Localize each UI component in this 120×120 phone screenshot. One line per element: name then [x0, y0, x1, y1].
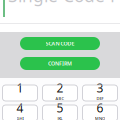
button[interactable]: 1	[2, 85, 37, 101]
staticText: GHI	[16, 116, 23, 120]
staticText: CONFIRM	[48, 60, 72, 67]
staticText: 1	[16, 80, 23, 96]
staticText: DEF	[96, 96, 103, 101]
staticText: 5	[56, 100, 63, 116]
button[interactable]: SCAN CODE	[20, 37, 100, 50]
staticText: MNO	[95, 116, 105, 120]
staticText: 6	[96, 100, 103, 116]
button[interactable]: 6	[82, 105, 117, 120]
staticText: 4	[16, 100, 23, 116]
button[interactable]: CONFIRM	[20, 57, 100, 70]
staticText: ABC	[55, 96, 64, 101]
button[interactable]: 4	[2, 105, 37, 120]
staticText: SCAN CODE	[45, 40, 74, 47]
staticText: Single Code Placeholder	[8, 0, 120, 7]
button[interactable]: 2	[42, 85, 77, 101]
staticText: JKL	[57, 116, 62, 120]
staticText: 2	[56, 80, 63, 96]
button[interactable]: 3	[82, 85, 117, 101]
button[interactable]: 5	[42, 105, 77, 120]
staticText: 3	[96, 80, 103, 96]
